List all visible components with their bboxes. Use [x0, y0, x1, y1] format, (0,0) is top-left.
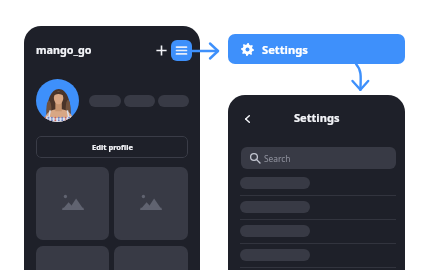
staticText: Settings	[294, 110, 340, 125]
button[interactable]: Photo	[36, 167, 109, 240]
button[interactable]: Menu	[171, 40, 192, 61]
button[interactable]	[228, 201, 405, 225]
button[interactable]: Photo	[114, 167, 188, 240]
button[interactable]: Settings	[228, 34, 405, 64]
button[interactable]: Search	[241, 147, 396, 169]
button[interactable]	[228, 225, 405, 249]
staticText: mango_go	[36, 42, 92, 57]
button[interactable]: Back	[239, 111, 255, 127]
button[interactable]	[228, 177, 405, 201]
button[interactable]: Add	[152, 41, 170, 59]
button[interactable]: Edit profile	[36, 136, 188, 158]
staticText: Edit profile	[92, 142, 133, 152]
button[interactable]	[228, 249, 405, 270]
staticText: Settings	[262, 42, 308, 57]
staticText: Search	[264, 153, 291, 164]
